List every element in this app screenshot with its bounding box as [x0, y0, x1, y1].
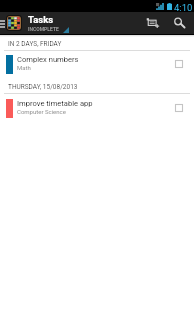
staticText: THURSDAY, 15/08/2013 — [8, 83, 78, 91]
staticText: IN 2 DAYS, FRIDAY — [8, 40, 62, 48]
staticText: Tasks — [28, 14, 54, 25]
staticText: Math — [17, 64, 31, 71]
button[interactable]: Open navigation — [0, 12, 69, 34]
staticText: Complex numbers — [17, 55, 79, 64]
button[interactable]: Improve timetable app — [0, 94, 194, 123]
staticText: INCOMPLETE — [28, 26, 59, 32]
button[interactable]: Mark complete — [167, 54, 191, 78]
button[interactable]: New task — [139, 12, 167, 34]
staticText: Computer Science — [17, 108, 66, 115]
staticText: 4:10 — [174, 2, 193, 13]
staticText: Improve timetable app — [17, 99, 93, 108]
button[interactable]: Search — [167, 12, 193, 34]
button[interactable]: Mark complete — [167, 97, 191, 121]
button[interactable]: Complex numbers — [0, 51, 194, 80]
